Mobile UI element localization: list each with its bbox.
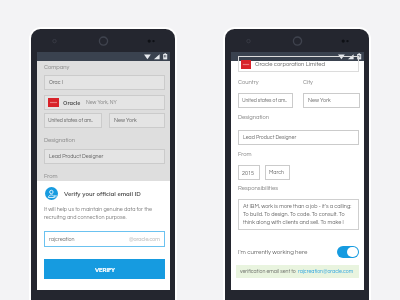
staticText: Oracle: [63, 99, 81, 106]
button[interactable]: At IBM, work is more than a job - it's a…: [238, 199, 359, 230]
staticText: verification email sent to: [240, 269, 298, 274]
button[interactable]: Oracle corporation Limited: [238, 56, 359, 72]
staticText: New York: [308, 98, 331, 104]
staticText: Country: [238, 79, 259, 85]
button[interactable]: Lead Product Designer: [44, 149, 165, 164]
other: Currently working here toggle: [337, 246, 359, 258]
button[interactable]: VERIFY: [44, 259, 165, 279]
staticText: rajcreation@oracle.com: [298, 269, 354, 274]
staticText: Verify your official email ID: [64, 190, 141, 198]
staticText: At IBM, work is more than a job - it's a…: [243, 203, 352, 225]
staticText: New York, NY: [86, 100, 117, 105]
button[interactable]: I'm currently working here: [238, 246, 359, 258]
staticText: rajcreation: [49, 237, 75, 242]
staticText: Oracle corporation Limited: [255, 61, 326, 67]
button[interactable]: New York: [303, 93, 360, 108]
staticText: From: [44, 173, 58, 179]
staticText: From: [238, 151, 252, 157]
staticText: City: [303, 79, 313, 85]
staticText: United states of am..: [242, 98, 288, 103]
button[interactable]: Orac l: [44, 75, 165, 90]
staticText: @oracle.com: [129, 237, 160, 242]
staticText: I'm currently working here: [238, 249, 308, 255]
button[interactable]: 2015: [238, 165, 260, 180]
staticText: Lead Product Designer: [243, 135, 297, 140]
staticText: Orac l: [49, 80, 63, 85]
staticText: 2015: [242, 170, 255, 176]
staticText: Designation: [44, 137, 76, 143]
button[interactable]: New York: [109, 113, 165, 128]
button[interactable]: Lead Product Designer: [238, 130, 359, 145]
staticText: It will help us to maintain genuine data…: [44, 207, 152, 220]
staticText: Designation: [238, 114, 270, 120]
staticText: Responsibilities: [238, 185, 278, 191]
staticText: Lead Product Designer: [49, 154, 104, 159]
staticText: VERIFY: [95, 266, 115, 273]
staticText: March: [269, 170, 285, 175]
staticText: Company: [44, 64, 70, 70]
other: Verified account: [45, 187, 58, 200]
button[interactable]: rajcreation: [44, 231, 165, 247]
staticText: New York: [114, 118, 137, 124]
button[interactable]: United states of am..: [238, 93, 293, 108]
button[interactable]: United states of am..: [44, 113, 102, 128]
button[interactable]: Oracle: [44, 95, 165, 110]
staticText: United states of am..: [48, 118, 94, 123]
button[interactable]: March: [265, 165, 290, 180]
